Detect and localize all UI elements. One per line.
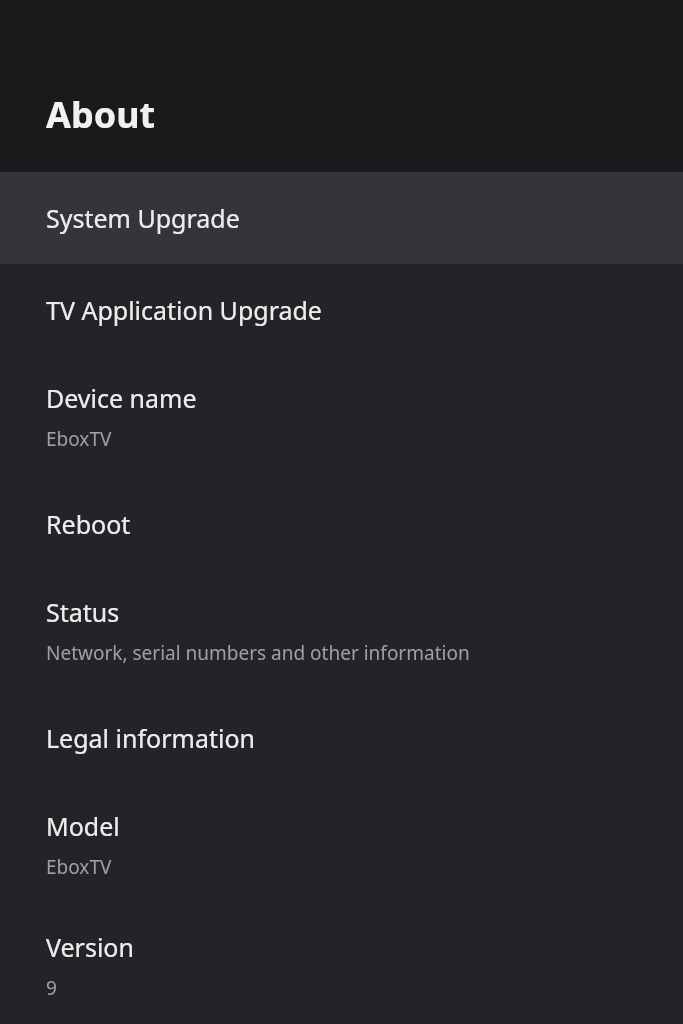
button[interactable]: System Upgrade xyxy=(0,172,683,264)
staticText: Device name xyxy=(46,381,197,415)
staticText: Network, serial numbers and other inform… xyxy=(46,640,470,666)
button[interactable]: Status xyxy=(0,569,683,692)
staticText: Version xyxy=(46,930,134,964)
button[interactable]: TV Application Upgrade xyxy=(0,264,683,355)
button[interactable]: Legal information xyxy=(0,692,683,783)
staticText: 9 xyxy=(46,975,57,1001)
staticText: TV Application Upgrade xyxy=(46,293,322,327)
staticText: EboxTV xyxy=(46,854,112,880)
staticText: Legal information xyxy=(46,721,255,755)
staticText: About xyxy=(46,90,156,139)
button[interactable]: Model xyxy=(0,783,683,906)
staticText: System Upgrade xyxy=(46,201,240,235)
staticText: Status xyxy=(46,595,120,629)
button[interactable]: Reboot xyxy=(0,478,683,569)
staticText: EboxTV xyxy=(46,426,112,452)
staticText: Model xyxy=(46,809,120,843)
staticText: Reboot xyxy=(46,507,131,541)
button[interactable]: Device name xyxy=(0,355,683,478)
button[interactable]: Version xyxy=(0,906,683,1024)
